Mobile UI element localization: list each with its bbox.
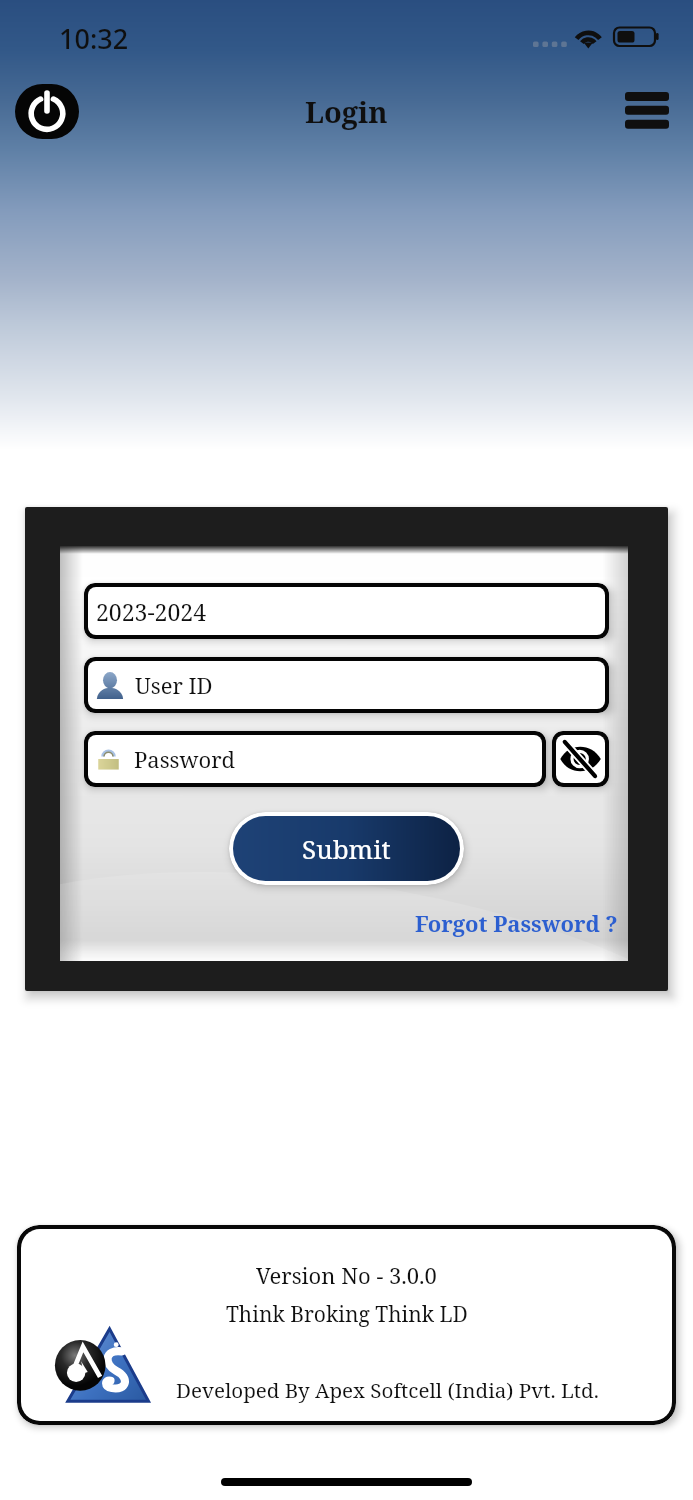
button[interactable]: Power / logout (15, 84, 79, 139)
button[interactable]: 2023-2024 (88, 587, 605, 635)
staticText: Think Broking Think LD (226, 1300, 468, 1329)
button[interactable]: Show password (556, 735, 605, 783)
staticText: Version No - 3.0.0 (256, 1260, 437, 1290)
button[interactable]: User ID (88, 661, 605, 709)
staticText: 10:32 (59, 20, 129, 57)
staticText: Login (305, 92, 388, 131)
staticText: User ID (135, 670, 213, 700)
staticText: 2023-2024 (96, 596, 206, 627)
staticText: Password (134, 744, 236, 774)
staticText: Developed By Apex Softcell (India) Pvt. … (176, 1376, 599, 1404)
button[interactable]: Menu (616, 86, 677, 131)
button[interactable]: Submit (233, 816, 460, 881)
staticText: Submit (302, 831, 391, 866)
button[interactable]: Forgot Password ? (415, 908, 618, 938)
button[interactable]: Password (88, 735, 542, 783)
